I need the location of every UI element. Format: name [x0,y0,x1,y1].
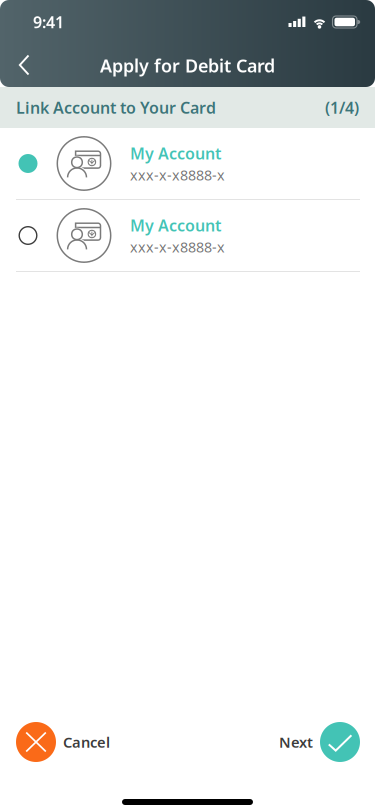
button[interactable]: Cancel [0,722,110,762]
button[interactable]: Next [279,722,375,762]
staticText: Next [279,732,313,752]
button[interactable]: My Account [0,128,375,200]
staticText: My Account [130,214,221,236]
staticText: My Account [130,142,221,164]
staticText: Apply for Debit Card [100,53,275,78]
staticText: Cancel [63,732,110,752]
staticText: Link Account to Your Card [16,97,216,118]
staticText: (1/4) [325,97,359,118]
button[interactable]: Back [0,44,46,86]
staticText: xxx-x-x8888-x [130,237,225,257]
button[interactable]: My Account [0,200,375,272]
staticText: 9:41 [33,11,64,33]
staticText: xxx-x-x8888-x [130,165,225,185]
